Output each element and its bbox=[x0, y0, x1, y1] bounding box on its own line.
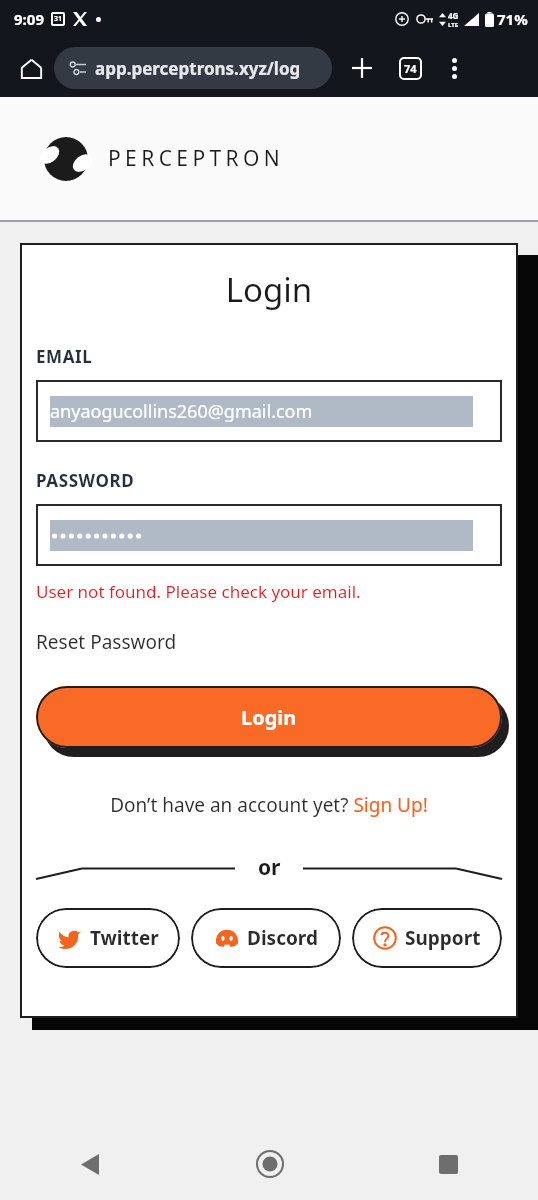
button[interactable]: More options bbox=[436, 50, 472, 86]
button[interactable]: Tabs: 74 bbox=[390, 48, 430, 88]
button[interactable]: New tab bbox=[342, 48, 382, 88]
staticText: Login bbox=[241, 704, 297, 731]
button[interactable]: Home bbox=[12, 49, 50, 87]
staticText: Twitter bbox=[90, 925, 159, 951]
button[interactable]: Twitter bbox=[36, 908, 180, 968]
staticText: 31 bbox=[54, 14, 63, 24]
staticText: 9:09 bbox=[14, 9, 44, 29]
button[interactable]: Back bbox=[0, 1128, 180, 1200]
button[interactable]: Don’t have an account yet? Sign Up! bbox=[36, 792, 502, 818]
staticText: LTE bbox=[448, 21, 459, 29]
staticText: PERCEPTRON bbox=[108, 144, 285, 173]
staticText: User not found. Please check your email. bbox=[36, 580, 361, 603]
staticText: app.perceptrons.xyz/log bbox=[95, 57, 301, 80]
staticText: 71% bbox=[497, 9, 528, 29]
button[interactable]: Login bbox=[36, 686, 502, 748]
staticText: Login bbox=[36, 267, 502, 312]
staticText: 4G bbox=[448, 10, 459, 21]
staticText: anyaogucollins260@gmail.com bbox=[50, 399, 313, 424]
staticText: Reset Password bbox=[36, 629, 177, 655]
button[interactable] bbox=[36, 504, 502, 566]
button[interactable]: Discord bbox=[191, 908, 341, 968]
staticText: 74 bbox=[404, 61, 417, 76]
button[interactable]: app.perceptrons.xyz/log bbox=[54, 47, 332, 89]
button[interactable]: Recent apps bbox=[359, 1128, 538, 1200]
staticText: Support bbox=[405, 925, 481, 951]
button[interactable]: Support bbox=[352, 908, 502, 968]
staticText: EMAIL bbox=[36, 345, 93, 368]
staticText: Discord bbox=[247, 925, 318, 951]
button[interactable]: Home bbox=[180, 1128, 359, 1200]
button[interactable]: anyaogucollins260@gmail.com bbox=[36, 380, 502, 442]
staticText: PASSWORD bbox=[36, 469, 135, 492]
button[interactable]: Reset Password bbox=[36, 629, 177, 655]
staticText: or bbox=[258, 853, 281, 882]
